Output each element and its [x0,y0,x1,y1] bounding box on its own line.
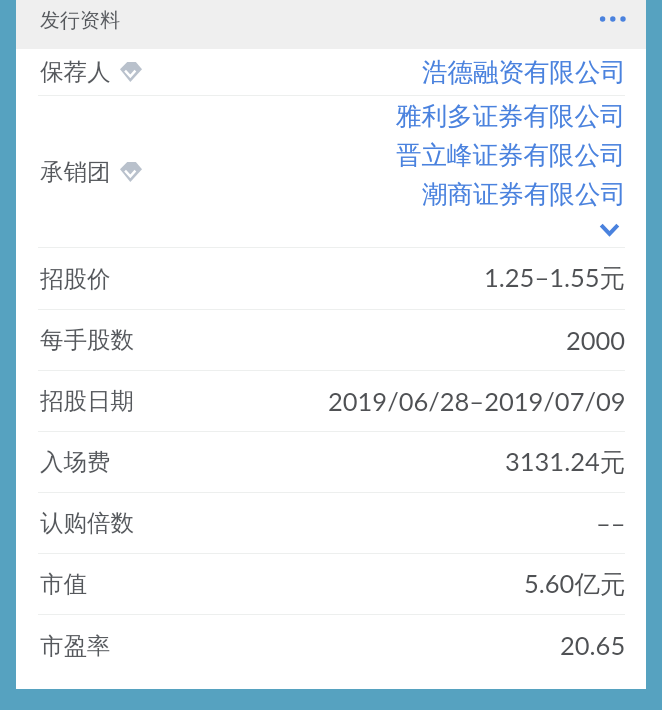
button[interactable]: 每手股数 [16,310,646,370]
staticText: 晋立峰证券有限公司 [396,139,626,171]
staticText: 潮商证券有限公司 [422,178,626,210]
staticText: –– [596,508,626,539]
staticText: 5.60亿元 [524,568,626,601]
button[interactable]: 市盈率 [16,615,646,676]
staticText: 3131.24元 [505,446,626,479]
button[interactable]: 招股日期 [16,371,646,431]
staticText: 招股价 [40,264,111,294]
button[interactable]: Expand underwriters [596,213,626,247]
button[interactable]: More options [596,0,642,38]
staticText: 每手股数 [40,325,134,355]
staticText: 浩德融资有限公司 [422,56,626,88]
staticText: 1.25–1.55元 [484,262,626,295]
button[interactable]: 认购倍数 [16,493,646,553]
button[interactable]: 保荐人 [16,49,646,95]
staticText: 发行资料 [40,8,120,33]
staticText: 招股日期 [40,386,134,416]
button[interactable]: 承销团 [16,96,646,247]
staticText: 市值 [40,569,87,599]
staticText: 认购倍数 [40,508,134,538]
staticText: 承销团 [40,157,111,187]
button[interactable]: 招股价 [16,248,646,309]
button[interactable]: 入场费 [16,432,646,492]
staticText: 保荐人 [40,57,111,87]
staticText: 2019/06/28–2019/07/09 [328,386,626,417]
staticText: 入场费 [40,447,111,477]
button[interactable]: 市值 [16,554,646,614]
staticText: 20.65 [560,630,626,661]
staticText: 市盈率 [40,631,111,661]
staticText: 2000 [566,325,626,356]
staticText: 雅利多证券有限公司 [396,100,626,132]
